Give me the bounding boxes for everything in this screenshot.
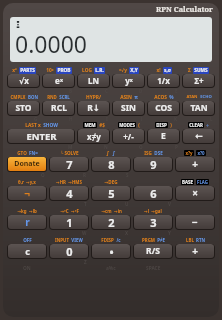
staticText: E — [161, 130, 166, 142]
button[interactable]: x≠y — [77, 129, 110, 144]
staticText: O — [139, 144, 143, 149]
staticText: π — [134, 94, 138, 101]
staticText: 5 — [108, 186, 115, 200]
button[interactable]: Σ+ — [182, 74, 215, 88]
button[interactable]: 8 — [91, 157, 131, 172]
staticText: PARTS — [20, 67, 35, 74]
button[interactable]: 7 — [49, 157, 89, 172]
button[interactable]: eˣ — [42, 74, 75, 88]
staticText: L.R. — [95, 67, 104, 74]
button[interactable]: Multiply — [175, 186, 215, 201]
staticText: FLAG — [197, 179, 208, 185]
staticText: SPACE — [146, 265, 161, 272]
button[interactable]: √x — [7, 74, 40, 88]
staticText: 4 — [66, 186, 73, 200]
button[interactable]: TAN — [182, 101, 215, 116]
button[interactable]: ENTER — [7, 129, 75, 144]
staticText: r — [25, 215, 30, 229]
staticText: COS — [155, 102, 172, 114]
staticText: ∫ — [106, 150, 110, 156]
staticText: SIN — [121, 102, 136, 114]
button[interactable]: LN — [77, 74, 110, 88]
staticText: × — [192, 186, 198, 200]
button[interactable]: 0 — [49, 244, 89, 259]
staticText: Q — [41, 172, 45, 177]
staticText: S — [126, 172, 129, 177]
staticText: BASE — [182, 179, 193, 185]
staticText: →ºC — [60, 208, 69, 214]
staticText: INPUT — [55, 237, 69, 243]
button[interactable]: 9 — [133, 157, 173, 172]
button[interactable]: Backspace — [182, 129, 215, 144]
staticText: BON — [28, 94, 38, 100]
button[interactable]: 4 — [49, 186, 89, 201]
staticText: ∫ — [112, 150, 116, 156]
staticText: x! — [156, 67, 161, 74]
button[interactable]: 1/x — [147, 74, 180, 88]
staticText: x?0 — [197, 150, 205, 156]
button[interactable]: Plus — [175, 244, 215, 259]
staticText: Σ+ — [194, 75, 204, 86]
button[interactable]: 3 — [133, 215, 173, 230]
button[interactable]: Plus — [175, 157, 215, 172]
button[interactable]: 6 — [133, 186, 173, 201]
staticText: R/S — [146, 245, 160, 257]
button[interactable]: Donate — [7, 157, 47, 172]
staticText: 1/x — [157, 75, 170, 86]
staticText: 7 — [66, 157, 73, 171]
button[interactable]: 1 — [49, 215, 89, 230]
staticText: 6 — [150, 186, 157, 200]
staticText: ¬ — [24, 186, 30, 200]
staticText: Z — [84, 259, 87, 264]
staticText: T — [84, 201, 87, 206]
button[interactable]: E — [147, 129, 180, 144]
button[interactable]: COS — [147, 101, 180, 116]
staticText: a%c — [106, 265, 116, 272]
button[interactable]: R/S — [133, 244, 173, 259]
staticText: − — [192, 215, 198, 229]
staticText: ← — [195, 131, 203, 141]
staticText: • — [109, 244, 114, 258]
button[interactable]: RCL — [42, 101, 75, 116]
staticText: →kg — [17, 208, 27, 214]
staticText: ECHO — [200, 94, 212, 100]
button[interactable]: +/- — [112, 129, 145, 144]
staticText: ( — [138, 122, 140, 128]
staticText: RPN Calculator — [156, 4, 213, 14]
staticText: LAST x — [25, 122, 41, 129]
button[interactable]: Decimal point — [91, 244, 131, 259]
staticText: P≠E — [157, 237, 165, 243]
button[interactable]: Shift f — [7, 186, 47, 201]
button[interactable]: R↓ — [77, 101, 110, 116]
staticText: RCL — [51, 102, 67, 114]
staticText: ENTER — [26, 130, 57, 143]
staticText: ˣ√y — [119, 67, 127, 74]
button[interactable]: Minus — [175, 215, 215, 230]
button[interactable]: yˣ — [112, 74, 145, 88]
staticText: +/- — [123, 131, 134, 142]
button[interactable]: STO — [7, 101, 40, 116]
staticText: #$ — [99, 122, 105, 128]
staticText: TAN — [190, 102, 208, 114]
staticText: ÷ — [206, 122, 209, 128]
staticText: SHOW — [43, 122, 58, 129]
button[interactable]: Shift g — [7, 215, 47, 230]
button[interactable]: 2 — [91, 215, 131, 230]
button[interactable]: SIN — [112, 101, 145, 116]
staticText: ACOS — [154, 94, 167, 101]
button[interactable]: c — [7, 244, 47, 259]
staticText: U — [125, 201, 129, 206]
staticText: √x — [19, 75, 29, 86]
staticText: →l — [144, 208, 149, 214]
button[interactable]: 5 — [91, 186, 131, 201]
staticText: ISG — [144, 150, 152, 156]
staticText: LN — [88, 75, 99, 86]
staticText: V — [168, 201, 171, 206]
